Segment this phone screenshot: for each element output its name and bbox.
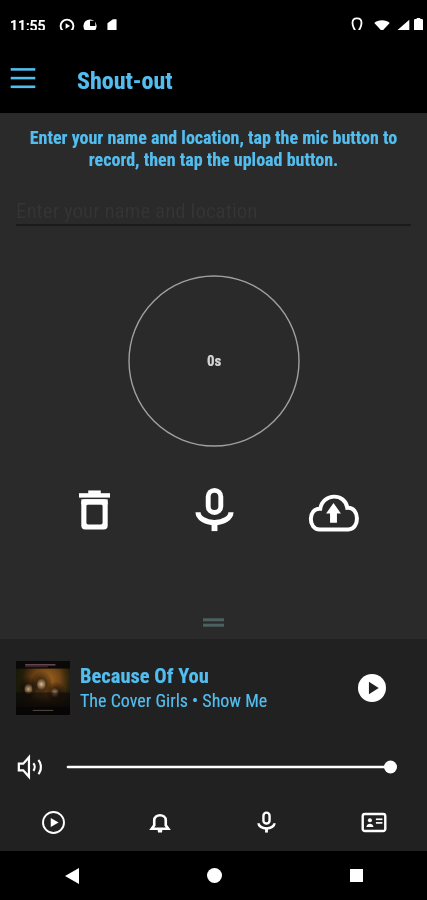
button[interactable]: Expand player (0, 611, 427, 639)
button[interactable]: Delete recording (63, 479, 125, 541)
button[interactable]: Enter your name and location (16, 197, 411, 253)
button[interactable]: Microphone (213, 799, 320, 845)
staticText: Shout-out (77, 67, 173, 95)
staticText: 11:55 (10, 18, 46, 34)
button[interactable]: Contacts (320, 799, 427, 845)
button[interactable]: Upload (302, 481, 364, 543)
button[interactable]: Record (183, 478, 245, 540)
staticText: Because Of You (80, 664, 209, 688)
button[interactable]: Notifications (106, 799, 213, 845)
button[interactable]: Menu (1, 56, 45, 100)
button[interactable]: Volume (14, 752, 46, 782)
button[interactable]: Back (0, 851, 143, 900)
staticText: The Cover Girls • Show Me (80, 690, 268, 711)
staticText: 0s (207, 352, 222, 370)
staticText: Enter your name and location (16, 199, 258, 224)
button[interactable]: Recents (285, 851, 427, 900)
button[interactable]: Play (351, 667, 393, 709)
button[interactable]: Home (143, 851, 285, 900)
button[interactable]: Recording timer (128, 275, 300, 447)
staticText: Enter your name and location, tap the mi… (12, 127, 415, 171)
button[interactable]: Play circle (0, 799, 106, 845)
